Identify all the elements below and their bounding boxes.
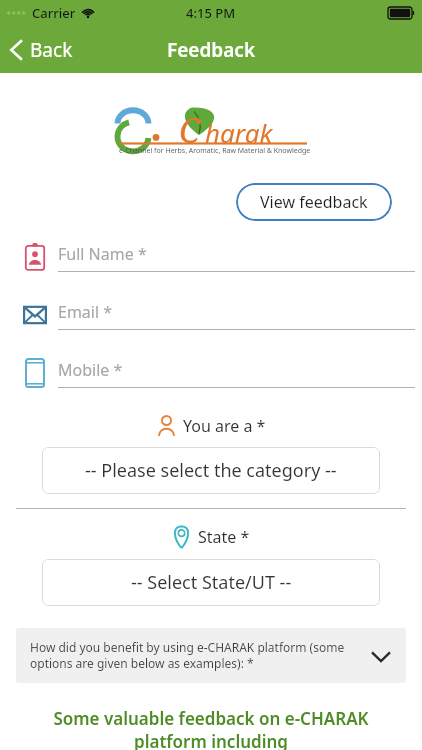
staticText: Email *	[58, 301, 113, 323]
staticText: State *	[198, 526, 250, 548]
staticText: 4:15 PM	[186, 4, 236, 22]
button[interactable]: Full Name *	[0, 241, 422, 273]
staticText: You are a *	[183, 415, 266, 437]
staticText: C	[179, 107, 201, 153]
staticText: View feedback	[260, 191, 368, 213]
staticText: Feedback	[167, 37, 256, 63]
button[interactable]: View feedback	[236, 183, 392, 221]
staticText: Mobile *	[58, 359, 123, 381]
button[interactable]: Back	[0, 31, 85, 69]
staticText: Carrier	[32, 4, 76, 22]
staticText: How did you benefit by using e-CHARAK pl…	[30, 639, 360, 672]
button[interactable]: Mobile *	[0, 357, 422, 389]
staticText: -- Please select the category --	[85, 458, 337, 483]
button[interactable]: -- Select State/UT --	[42, 559, 380, 606]
button[interactable]: -- Please select the category --	[42, 447, 380, 494]
button[interactable]: Email *	[0, 299, 422, 331]
staticText: harak	[205, 115, 273, 150]
staticText: Back	[30, 37, 73, 63]
other: Expand	[370, 645, 392, 667]
button[interactable]: How did you benefit by using e-CHARAK pl…	[16, 628, 406, 683]
staticText: Full Name *	[58, 243, 147, 265]
staticText: e-Channel for Herbs, Aromatic, Raw Mater…	[119, 146, 311, 156]
staticText: Some valuable feedback on e-CHARAK platf…	[16, 707, 406, 750]
staticText: -- Select State/UT --	[131, 570, 292, 595]
